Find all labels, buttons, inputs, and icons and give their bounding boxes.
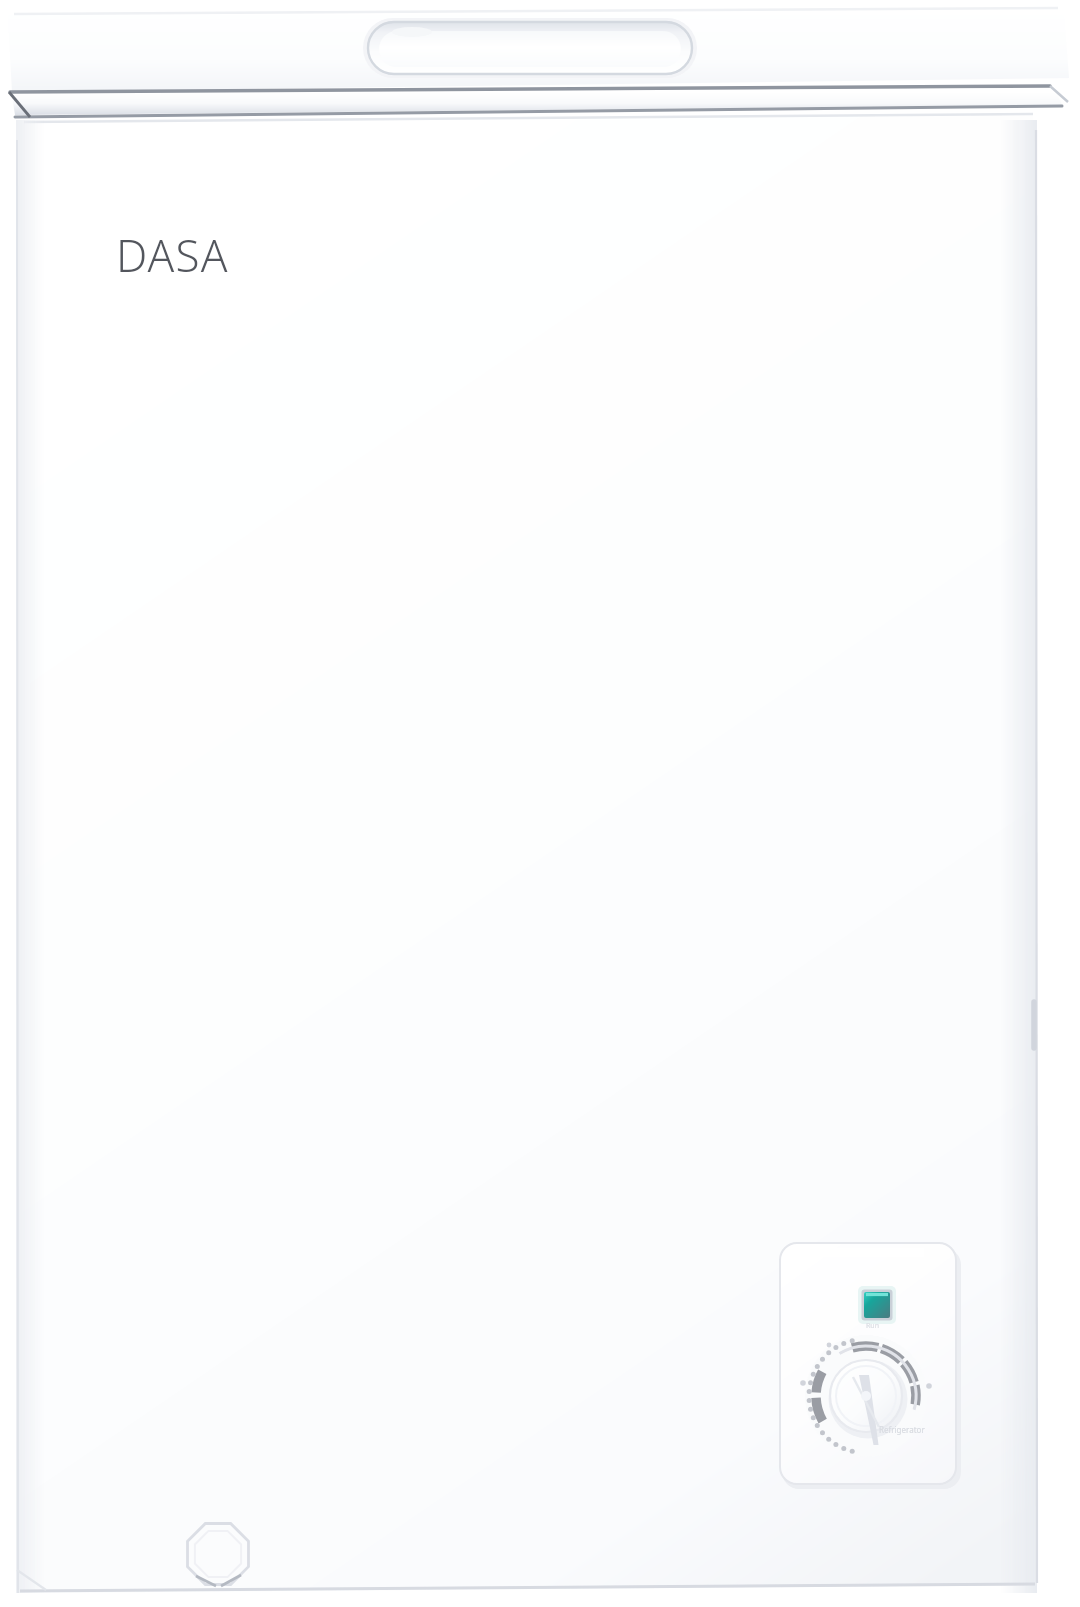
button[interactable]: Temperature control panel: [780, 1243, 956, 1484]
staticText: Refrigerator: [879, 1424, 925, 1435]
button[interactable]: Lid handle: [368, 18, 694, 78]
staticText: DASA: [116, 225, 229, 285]
staticText: Run: [866, 1321, 880, 1331]
button[interactable]: DASA brand logo: [116, 225, 229, 285]
